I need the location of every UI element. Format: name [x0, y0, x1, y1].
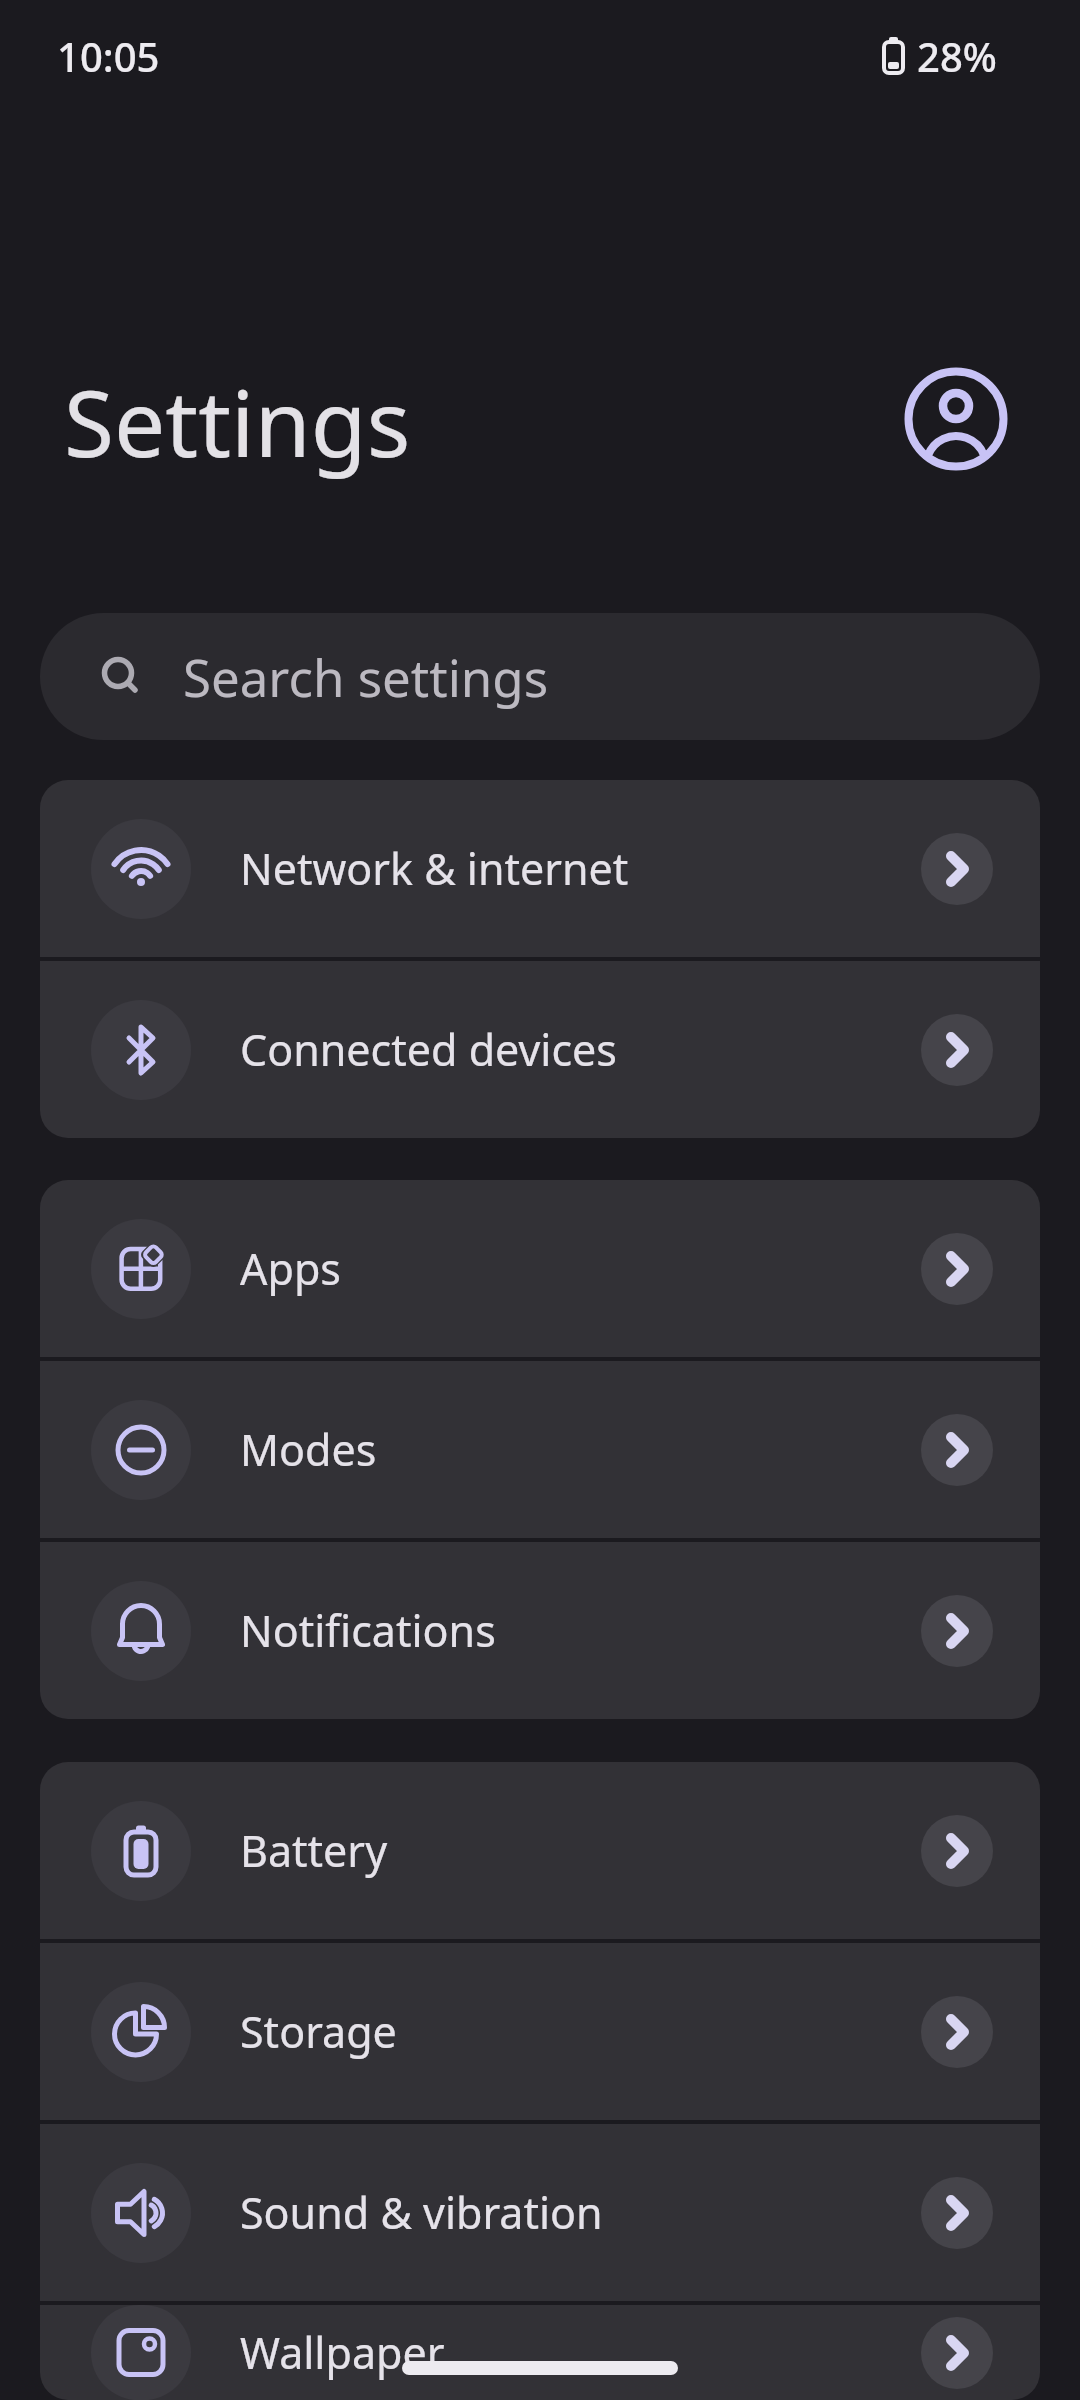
staticText: Modes [240, 1420, 377, 1479]
staticText: Network & internet [240, 839, 629, 898]
button[interactable]: Sound & vibration [40, 2124, 1040, 2301]
staticText: Connected devices [240, 1020, 617, 1079]
button[interactable]: Notifications [40, 1542, 1040, 1719]
staticText: 28% [917, 29, 997, 83]
button[interactable]: Search settings [40, 613, 1040, 740]
button[interactable]: Storage [40, 1943, 1040, 2120]
button[interactable] [904, 367, 1008, 471]
button[interactable]: Battery [40, 1762, 1040, 1939]
button[interactable]: Network & internet [40, 780, 1040, 957]
staticText: Wallpaper [240, 2323, 445, 2382]
staticText: Search settings [183, 642, 549, 711]
staticText: Storage [240, 2002, 397, 2061]
staticText: 10:05 [57, 29, 160, 83]
button[interactable]: Connected devices [40, 961, 1040, 1138]
staticText: Battery [240, 1821, 388, 1880]
button[interactable]: Wallpaper [40, 2305, 1040, 2400]
button[interactable]: Modes [40, 1361, 1040, 1538]
button[interactable]: Apps [40, 1180, 1040, 1357]
staticText: Notifications [240, 1601, 496, 1660]
staticText: Settings [64, 360, 411, 484]
staticText: Sound & vibration [240, 2183, 603, 2242]
staticText: Apps [240, 1239, 341, 1298]
